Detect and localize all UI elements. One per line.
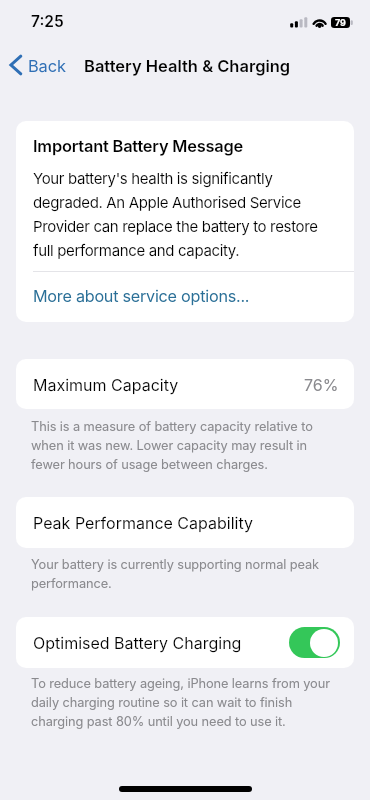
staticText: Battery Health & Charging [84,56,291,76]
staticText: 76% [304,375,339,394]
staticText: To reduce battery ageing, iPhone learns … [31,673,336,730]
staticText: 79 [335,17,346,28]
staticText: Maximum Capacity [33,375,179,394]
staticText: Optimised Battery Charging [33,633,242,652]
button[interactable]: Back [8,51,68,79]
button[interactable]: Maximum Capacity [16,359,354,409]
button[interactable]: Optimised Battery Charging [289,627,340,658]
staticText: This is a measure of battery capacity re… [31,416,334,473]
staticText: Your battery's health is significantly d… [33,165,340,261]
staticText: Peak Performance Capability [33,513,253,532]
staticText: Important Battery Message [33,136,244,156]
staticText: 7:25 [31,12,64,31]
button[interactable]: More about service options... [16,272,354,320]
button[interactable]: Peak Performance Capability [16,497,354,548]
staticText: Your battery is currently supporting nor… [31,554,340,592]
staticText: Back [28,56,66,76]
staticText: More about service options... [33,286,250,306]
